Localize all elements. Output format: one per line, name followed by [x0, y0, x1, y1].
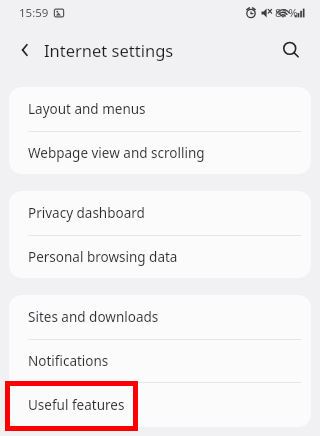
button[interactable]: Layout and menus — [9, 87, 311, 131]
button[interactable]: Useful features — [9, 383, 311, 427]
staticText: 81% — [275, 5, 298, 21]
button[interactable]: Personal browsing data — [9, 236, 311, 278]
staticText: Webpage view and scrolling — [28, 144, 205, 162]
staticText: Sites and downloads — [28, 308, 159, 326]
button[interactable]: Sites and downloads — [9, 295, 311, 339]
staticText: Personal browsing data — [28, 248, 178, 266]
button[interactable]: Webpage view and scrolling — [9, 132, 311, 174]
staticText: Layout and menus — [28, 100, 146, 118]
button[interactable]: Privacy dashboard — [9, 191, 311, 235]
staticText: Useful features — [28, 396, 125, 414]
staticText: 15:59 — [19, 5, 49, 21]
staticText: Notifications — [28, 352, 109, 370]
staticText: Privacy dashboard — [28, 204, 145, 222]
staticText: Internet settings — [44, 39, 174, 61]
button[interactable]: Back — [11, 36, 39, 64]
button[interactable]: Search — [276, 35, 306, 65]
button[interactable]: Notifications — [9, 340, 311, 382]
